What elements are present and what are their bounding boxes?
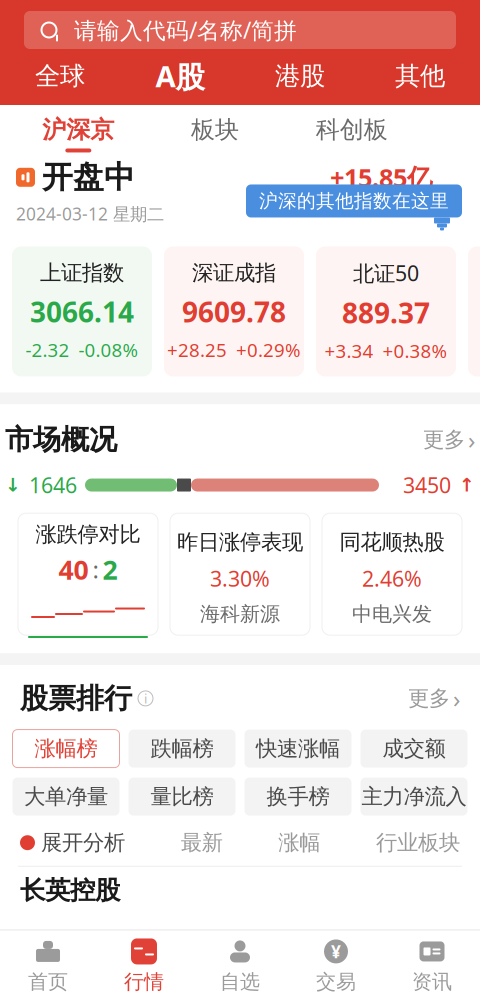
- staticText: 2: [102, 552, 117, 587]
- staticText: 9609.78: [182, 293, 286, 330]
- button[interactable]: 涨幅榜: [12, 730, 119, 768]
- staticText: 深证成指: [192, 260, 276, 286]
- button[interactable]: 更多: [423, 424, 475, 456]
- button[interactable]: 量比榜: [128, 778, 235, 816]
- button[interactable]: 成交额: [360, 730, 467, 768]
- staticText: 港股: [275, 60, 325, 91]
- staticText: 40: [58, 552, 88, 587]
- button[interactable]: ¥: [288, 937, 384, 994]
- button[interactable]: 资讯: [384, 937, 480, 994]
- staticText: 跌幅榜: [150, 735, 213, 762]
- staticText: :: [92, 553, 98, 585]
- button[interactable]: 跌幅榜: [128, 730, 235, 768]
- staticText: 沪深的其他指数在这里: [259, 189, 449, 212]
- staticText: 板块: [191, 115, 239, 144]
- button[interactable]: 主力净流入: [360, 778, 467, 816]
- button[interactable]: 板块: [147, 105, 283, 158]
- staticText: 中电兴发: [352, 602, 432, 626]
- button[interactable]: A股: [120, 59, 240, 93]
- staticText: 首页: [28, 969, 68, 994]
- staticText: ↓: [5, 474, 21, 496]
- staticText: 行情: [124, 969, 164, 994]
- staticText: 换手榜: [266, 783, 329, 810]
- staticText: 展开分析: [41, 830, 125, 856]
- staticText: 涨幅: [278, 830, 320, 856]
- button[interactable]: 科创板: [283, 105, 420, 158]
- staticText: 海科新源: [200, 602, 280, 626]
- staticText: 成交额: [382, 735, 445, 762]
- staticText: ›: [468, 424, 475, 456]
- staticText: 快速涨幅: [256, 735, 340, 762]
- staticText: A股: [155, 56, 204, 95]
- button[interactable]: 同花顺热股: [322, 513, 462, 635]
- staticText: 股票排行: [20, 681, 132, 716]
- staticText: 昨日涨停表现: [177, 529, 303, 555]
- staticText: 更多: [408, 685, 450, 711]
- staticText: 北证50: [353, 259, 419, 287]
- staticText: 同花顺热股: [339, 529, 444, 555]
- staticText: i: [144, 689, 147, 707]
- staticText: 沪深京: [42, 115, 114, 144]
- staticText: -0.08%: [78, 337, 138, 362]
- staticText: 涨幅榜: [34, 735, 97, 762]
- staticText: +28.25: [167, 337, 227, 362]
- staticText: 行业板块: [376, 830, 460, 856]
- button[interactable]: 其他: [360, 59, 480, 93]
- staticText: 主力净流入: [361, 783, 466, 810]
- button[interactable]: 首页: [0, 937, 96, 994]
- staticText: 量比榜: [150, 783, 213, 810]
- staticText: 2.46%: [362, 564, 422, 593]
- button[interactable]: 涨跌停对比: [18, 513, 158, 635]
- staticText: 市场概况: [5, 422, 117, 457]
- staticText: ↑: [459, 474, 475, 496]
- staticText: 3066.14: [30, 293, 134, 330]
- button[interactable]: 深证成指: [164, 246, 304, 376]
- staticText: 自选: [220, 969, 260, 994]
- staticText: 上证指数: [40, 260, 124, 286]
- button[interactable]: 换手榜: [244, 778, 351, 816]
- staticText: -2.32: [25, 337, 69, 362]
- staticText: 交易: [316, 969, 356, 994]
- staticText: +0.29%: [236, 337, 301, 362]
- staticText: 请输入代码/名称/简拼: [74, 15, 297, 45]
- staticText: 更多: [423, 427, 465, 453]
- staticText: +0.38%: [382, 338, 447, 363]
- staticText: 科创板: [316, 115, 388, 144]
- staticText: 最新: [181, 830, 223, 856]
- staticText: 大单净量: [24, 783, 108, 810]
- staticText: +3.34: [324, 338, 373, 363]
- staticText: 3450: [403, 471, 451, 499]
- staticText: ¥: [331, 940, 341, 963]
- staticText: ›: [453, 682, 460, 714]
- staticText: +15.85亿: [330, 160, 432, 194]
- button[interactable]: 行情: [96, 937, 192, 994]
- staticText: 开盘中: [42, 158, 135, 196]
- button[interactable]: 昨日涨停表现: [170, 513, 310, 635]
- staticText: 其他: [395, 60, 445, 91]
- staticText: 889.37: [342, 294, 430, 331]
- button[interactable]: 上证指数: [12, 246, 152, 376]
- button[interactable]: 快速涨幅: [244, 730, 351, 768]
- staticText: 1646: [29, 471, 77, 499]
- staticText: 涨跌停对比: [35, 521, 140, 548]
- staticText: 全球: [35, 60, 85, 91]
- button[interactable]: 请输入代码/名称/简拼: [24, 11, 456, 49]
- staticText: 3.30%: [210, 564, 270, 593]
- staticText: 2024-03-12 星期二: [16, 202, 164, 225]
- button[interactable]: 全球: [0, 59, 120, 93]
- button[interactable]: 更多: [408, 682, 460, 714]
- button[interactable]: 展开分析: [20, 830, 125, 856]
- staticText: 资讯: [412, 969, 452, 994]
- button[interactable]: 大单净量: [12, 778, 119, 816]
- button[interactable]: 沪深京: [10, 105, 147, 158]
- staticText: 长英控股: [20, 875, 120, 906]
- button[interactable]: 北证50: [316, 246, 456, 376]
- button[interactable]: 港股: [240, 59, 360, 93]
- button[interactable]: 自选: [192, 937, 288, 994]
